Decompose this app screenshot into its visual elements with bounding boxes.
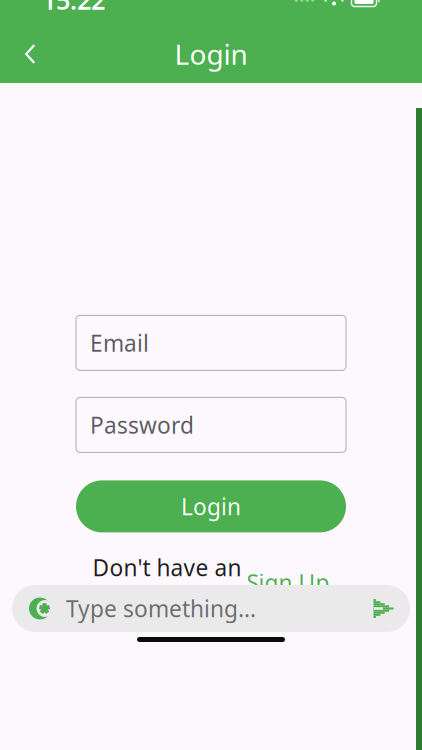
staticText: Don't have an account?: [92, 552, 241, 613]
staticText: Login: [181, 491, 241, 521]
button[interactable]: Back: [6, 32, 54, 76]
button[interactable]: Send: [362, 586, 406, 630]
staticText: 15:22: [42, 0, 105, 17]
staticText: Sign Up: [246, 567, 329, 597]
staticText: Type something...: [66, 593, 256, 623]
button[interactable]: Login: [76, 480, 346, 532]
button[interactable]: Sign Up: [246, 567, 329, 597]
staticText: Password: [90, 410, 194, 440]
staticText: Login: [174, 35, 247, 73]
staticText: Email: [90, 328, 149, 358]
